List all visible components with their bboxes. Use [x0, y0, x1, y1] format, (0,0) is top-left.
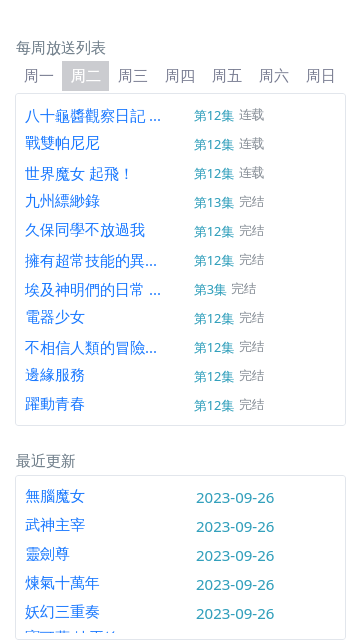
button[interactable]: 武神主宰: [15, 511, 346, 540]
staticText: 周四: [165, 67, 195, 86]
staticText: 最近更新: [16, 452, 76, 471]
staticText: 周日: [306, 67, 336, 86]
button[interactable]: 世界魔女 起飛！: [15, 158, 346, 187]
button[interactable]: 靈劍尊: [15, 540, 346, 569]
staticText: 第12集: [194, 251, 235, 268]
button[interactable]: 戰雙帕尼尼: [15, 129, 346, 158]
staticText: 世界魔女 起飛！: [25, 163, 194, 183]
staticText: 九州縹緲錄: [25, 192, 194, 211]
button[interactable]: 埃及神明們的日常 ...: [15, 274, 346, 303]
staticText: 完结: [239, 339, 265, 355]
staticText: 不相信人類的冒險...: [25, 337, 194, 357]
button[interactable]: 擁有超常技能的異...: [15, 245, 346, 274]
button[interactable]: 九州縹緲錄: [15, 187, 346, 216]
staticText: 2023-09-26: [196, 603, 275, 623]
button[interactable]: 無腦魔女: [15, 482, 346, 511]
staticText: 完结: [239, 368, 265, 384]
button[interactable]: 邊緣服務: [15, 361, 346, 390]
staticText: 第12集: [194, 222, 235, 239]
staticText: 完结: [239, 223, 265, 239]
button[interactable]: 不相信人類的冒險...: [15, 332, 346, 361]
button[interactable]: 躍動青春: [15, 390, 346, 419]
staticText: 八十龜醬觀察日記 ...: [25, 105, 194, 125]
staticText: 第12集: [194, 367, 235, 384]
staticText: 久保同學不放過我: [25, 221, 194, 240]
staticText: 躍動青春: [25, 395, 194, 414]
button[interactable]: 久保同學不放過我: [15, 216, 346, 245]
button[interactable]: 煉氣十萬年: [15, 569, 346, 598]
staticText: 妖幻三重奏: [25, 603, 196, 622]
staticText: 完结: [239, 252, 265, 268]
staticText: 靈劍尊: [25, 545, 196, 564]
staticText: 第13集: [194, 193, 235, 210]
button[interactable]: 妖幻三重奏: [15, 598, 346, 627]
staticText: 第12集: [194, 338, 235, 355]
button[interactable]: 周日: [297, 61, 344, 91]
staticText: 第12集: [194, 396, 235, 413]
staticText: 完结: [239, 397, 265, 413]
staticText: 周五: [212, 67, 242, 86]
staticText: 周一: [24, 67, 54, 86]
staticText: 完结: [239, 194, 265, 210]
staticText: 2023-09-26: [196, 487, 275, 507]
staticText: 無腦魔女: [25, 487, 196, 506]
staticText: 周六: [259, 67, 289, 86]
staticText: 煉氣十萬年: [25, 574, 196, 593]
staticText: 戰雙帕尼尼: [25, 134, 194, 153]
staticText: 完结: [231, 281, 257, 297]
button[interactable]: 電器少女: [15, 303, 346, 332]
staticText: 2023-09-26: [196, 516, 275, 536]
button[interactable]: 周三: [109, 61, 156, 91]
staticText: 连载: [239, 107, 265, 123]
button[interactable]: 周四: [156, 61, 203, 91]
staticText: 2023-09-26: [196, 574, 275, 594]
button[interactable]: 周六: [250, 61, 297, 91]
staticText: 第3集: [194, 280, 227, 297]
staticText: 第12集: [194, 106, 235, 123]
staticText: 2023-09-26: [196, 545, 275, 565]
button[interactable]: 周二: [62, 61, 109, 91]
staticText: 寶可夢 地平線: [25, 627, 196, 633]
button[interactable]: 周五: [203, 61, 250, 91]
staticText: 周二: [71, 67, 101, 86]
staticText: 每周放送列表: [16, 39, 106, 58]
staticText: 完结: [239, 310, 265, 326]
staticText: 第12集: [194, 164, 235, 181]
staticText: 第12集: [194, 309, 235, 326]
button[interactable]: 周一: [16, 61, 62, 91]
button[interactable]: 八十龜醬觀察日記 ...: [15, 100, 346, 129]
staticText: 埃及神明們的日常 ...: [25, 279, 194, 299]
staticText: 武神主宰: [25, 516, 196, 535]
staticText: 第12集: [194, 135, 235, 152]
staticText: 電器少女: [25, 308, 194, 327]
staticText: 邊緣服務: [25, 366, 194, 385]
staticText: 连载: [239, 136, 265, 152]
staticText: 连载: [239, 165, 265, 181]
button[interactable]: 寶可夢 地平線: [15, 627, 346, 633]
staticText: 擁有超常技能的異...: [25, 250, 194, 270]
staticText: 周三: [118, 67, 148, 86]
